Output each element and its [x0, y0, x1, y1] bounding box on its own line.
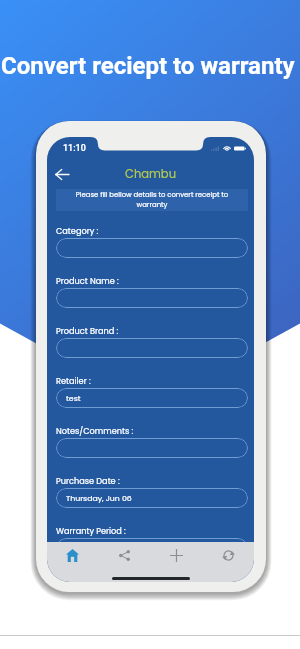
staticText: Chambu [125, 166, 176, 182]
staticText: Category : [56, 225, 99, 236]
staticText: Product Brand : [56, 325, 119, 336]
staticText: test [66, 393, 81, 404]
button[interactable]: Sync [202, 542, 254, 569]
button[interactable] [56, 538, 248, 558]
button[interactable] [56, 338, 248, 358]
button[interactable]: Back [49, 161, 75, 187]
button[interactable]: test [56, 388, 248, 408]
staticText: Notes/Comments : [56, 425, 134, 436]
staticText: Thursday, Jun 06 [66, 493, 132, 504]
staticText: Convert reciept to warranty [1, 52, 300, 80]
button[interactable]: Thursday, Jun 06 [56, 488, 248, 508]
staticText: Product Name : [56, 275, 119, 286]
staticText: Please fill bellow details to convert re… [68, 190, 236, 210]
staticText: Purchase Date : [56, 475, 120, 486]
button[interactable] [56, 238, 248, 258]
button[interactable]: Add [150, 542, 202, 569]
staticText: Retailer : [56, 375, 91, 386]
staticText: 11:10 [63, 143, 86, 154]
button[interactable]: Home [47, 542, 98, 569]
button[interactable] [56, 288, 248, 308]
button[interactable] [56, 438, 248, 458]
staticText: Warranty Period : [56, 525, 126, 536]
button[interactable]: Share [98, 542, 150, 569]
